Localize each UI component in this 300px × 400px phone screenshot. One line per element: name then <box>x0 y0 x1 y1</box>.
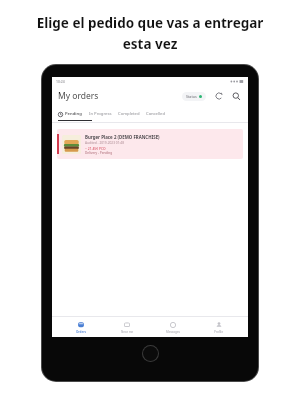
staticText: Cancelled <box>146 111 166 117</box>
staticText: Orders <box>76 330 87 334</box>
staticText: Status <box>186 94 197 99</box>
button[interactable]: Completed <box>115 111 143 117</box>
staticText: In Progress <box>89 111 112 117</box>
button[interactable]: Pending <box>58 111 86 117</box>
staticText: Near me <box>121 330 134 334</box>
button[interactable]: Orders <box>64 321 98 334</box>
staticText: My orders <box>58 90 99 102</box>
staticText: esta vez <box>0 35 300 53</box>
staticText: 10:24 <box>56 79 65 84</box>
button[interactable]: Profile <box>202 321 236 334</box>
button[interactable]: In Progress <box>86 111 115 117</box>
button[interactable]: Burger Place 2 (DEMO FRANCHISE) <box>57 129 243 159</box>
other: Home <box>143 346 158 361</box>
button[interactable]: Near me <box>110 321 144 334</box>
staticText: Pending <box>65 111 82 117</box>
staticText: Delivery - Pending <box>85 151 113 155</box>
button[interactable]: Status <box>182 92 206 101</box>
button[interactable]: Cancelled <box>143 111 169 117</box>
button[interactable]: Messages <box>156 321 190 334</box>
staticText: Profile <box>214 330 224 334</box>
staticText: Elige el pedido que vas a entregar <box>10 14 290 32</box>
staticText: ~ 21.45€ PCO <box>85 146 106 150</box>
staticText: Burger Place 2 (DEMO FRANCHISE) <box>85 134 160 140</box>
button[interactable]: Refresh <box>213 90 225 102</box>
staticText: Completed <box>118 111 140 117</box>
button[interactable]: Search <box>230 90 242 102</box>
staticText: Audited - 2019-2023 01:48 <box>85 141 124 145</box>
staticText: Messages <box>166 330 180 334</box>
